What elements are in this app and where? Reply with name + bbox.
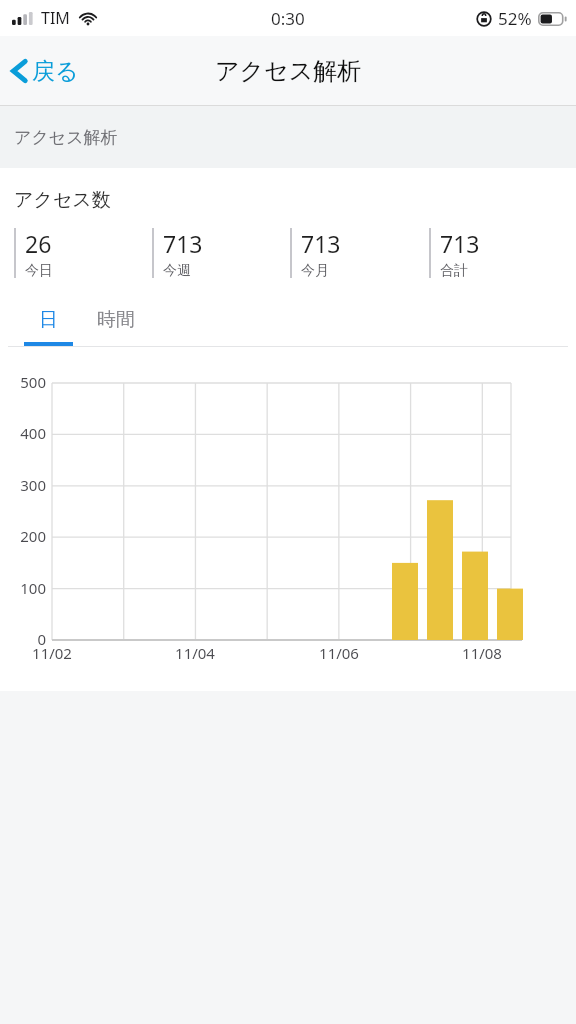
staticText: 11/02 (21, 643, 83, 663)
staticText: 時間 (97, 308, 135, 332)
staticText: 300 (4, 475, 46, 495)
staticText: 戻る (32, 57, 79, 86)
staticText: 400 (4, 423, 46, 443)
staticText: 0:30 (271, 7, 305, 30)
staticText: 11/06 (308, 643, 370, 663)
staticText: 200 (4, 526, 46, 546)
button[interactable]: 時間 (87, 306, 145, 347)
button[interactable]: 日 (24, 306, 73, 347)
staticText: 26 (25, 228, 52, 259)
staticText: 今週 (163, 262, 191, 280)
staticText: アクセス解析 (215, 56, 362, 86)
staticText: 今日 (25, 262, 53, 280)
staticText: 11/08 (451, 643, 513, 663)
staticText: TIM (41, 7, 70, 29)
staticText: アクセス解析 (14, 127, 118, 148)
button[interactable]: 戻る (0, 46, 95, 96)
staticText: 52% (498, 7, 532, 30)
staticText: 713 (163, 228, 203, 259)
staticText: 500 (4, 372, 46, 392)
staticText: 11/04 (164, 643, 226, 663)
staticText: 0 (4, 629, 46, 649)
staticText: 日 (39, 308, 58, 332)
staticText: 713 (440, 228, 480, 259)
staticText: アクセス数 (14, 188, 111, 212)
staticText: 100 (4, 578, 46, 598)
staticText: 今月 (301, 262, 329, 280)
staticText: 合計 (440, 262, 468, 280)
staticText: 713 (301, 228, 341, 259)
